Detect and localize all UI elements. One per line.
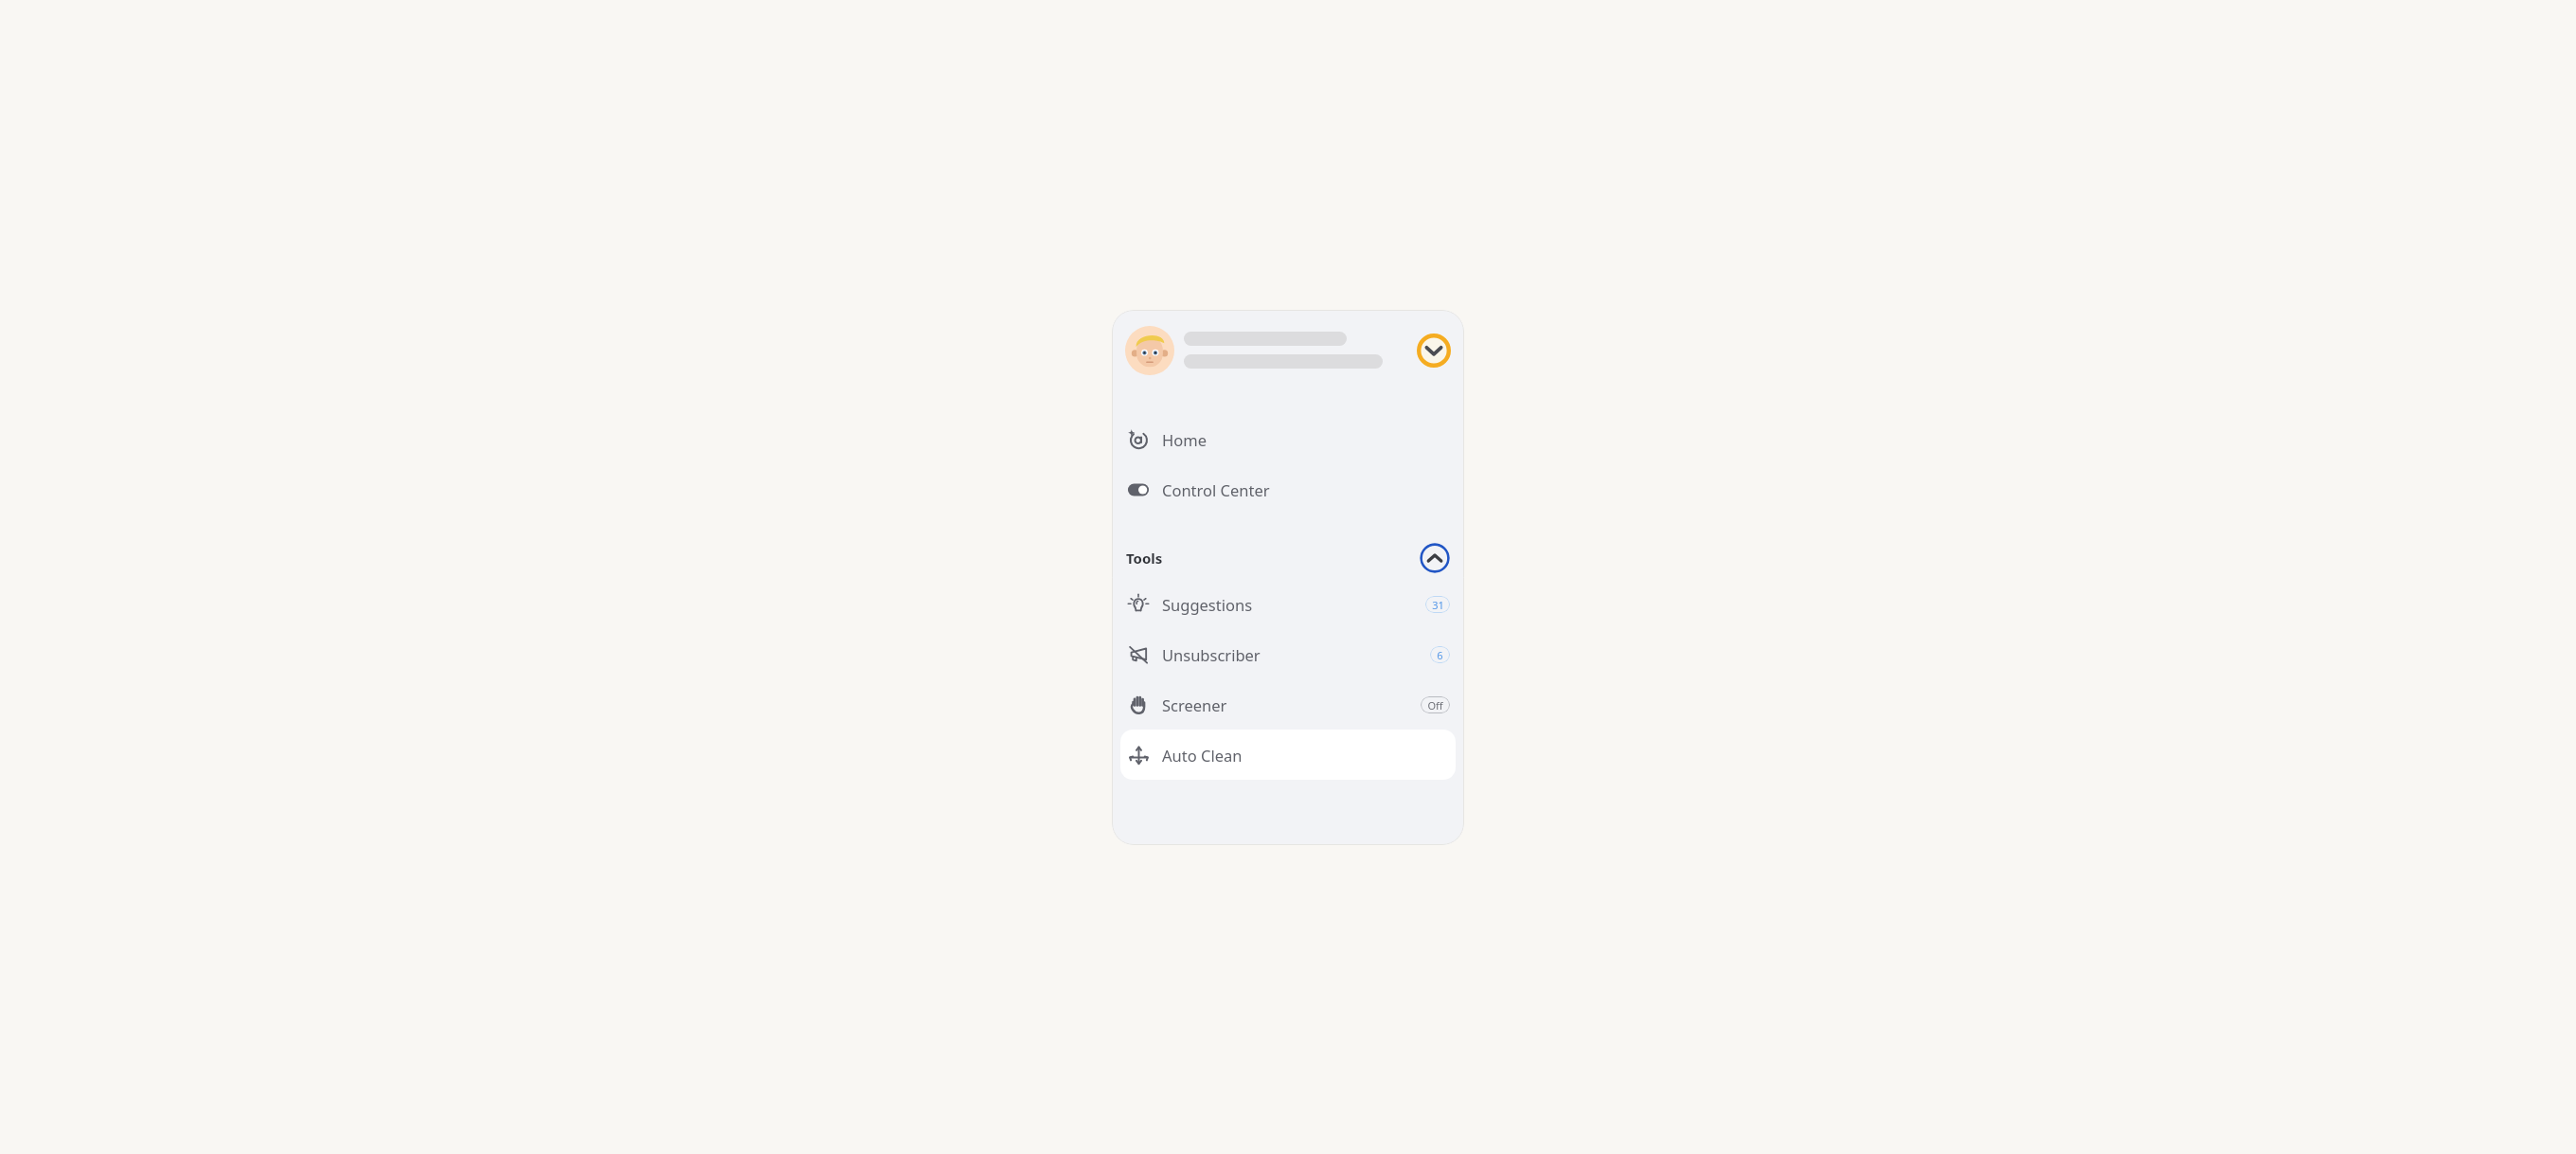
button[interactable]: Expand account [1125,322,1452,378]
button[interactable]: Collapse Tools [1420,543,1450,573]
staticText: 31 [1432,598,1444,612]
staticText: Tools [1126,549,1163,568]
staticText: Screener [1162,694,1227,715]
button[interactable]: Expand account [1416,333,1452,369]
staticText: Auto Clean [1162,745,1243,766]
staticText: Control Center [1162,479,1270,500]
staticText: Home [1162,429,1207,450]
staticText: Off [1427,698,1443,712]
staticText: Suggestions [1162,594,1253,615]
button[interactable]: Auto Clean [1120,730,1456,780]
button[interactable]: Control Center [1112,464,1464,514]
button[interactable]: Unsubscriber [1112,629,1464,679]
staticText: 6 [1437,648,1443,662]
staticText: Unsubscriber [1162,644,1261,665]
button[interactable]: Suggestions [1112,579,1464,629]
button[interactable]: Tools [1126,536,1450,579]
button[interactable]: Home [1112,414,1464,464]
button[interactable]: Screener [1112,679,1464,730]
